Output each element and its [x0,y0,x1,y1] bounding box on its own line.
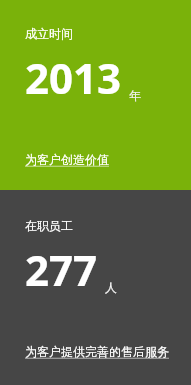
button[interactable]: 为客户提供完善的售后服务 [25,344,169,359]
staticText: 人 [105,280,117,295]
staticText: 年 [129,88,141,103]
staticText: 为客户提供完善的售后服务 [25,344,169,359]
button[interactable]: 成立时间 [0,0,191,190]
button[interactable]: 为客户创造价值 [25,152,109,167]
staticText: 为客户创造价值 [25,152,109,167]
staticText: 277 [25,241,98,298]
staticText: 在职员工 [25,218,73,233]
staticText: 2013 [25,49,122,106]
staticText: 成立时间 [25,26,73,41]
button[interactable]: 在职员工 [0,190,191,385]
